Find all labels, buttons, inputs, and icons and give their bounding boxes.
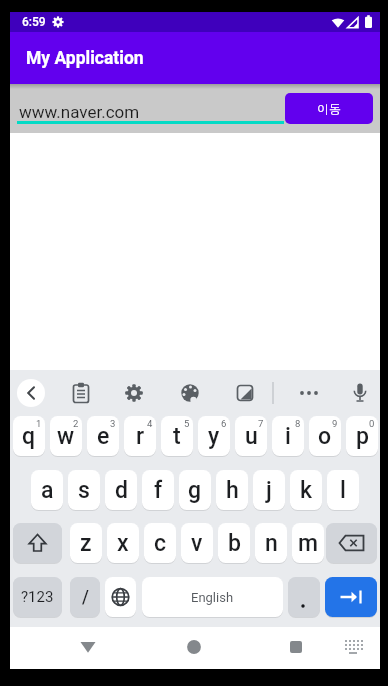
button[interactable]: q — [13, 416, 45, 456]
staticText: i — [285, 423, 291, 450]
staticText: p — [356, 423, 369, 450]
staticText: t — [173, 423, 181, 450]
button[interactable]: y — [198, 416, 230, 456]
button[interactable]: k — [290, 470, 322, 510]
button[interactable] — [281, 632, 311, 662]
staticText: 7 — [258, 418, 264, 429]
staticText: 5 — [184, 418, 190, 429]
button[interactable] — [326, 523, 377, 563]
staticText: My Application — [26, 48, 144, 69]
staticText: c — [154, 530, 167, 557]
staticText: 0 — [369, 418, 375, 429]
staticText: f — [154, 477, 163, 504]
button[interactable]: d — [105, 470, 137, 510]
button[interactable]: p — [346, 416, 378, 456]
button[interactable]: j — [253, 470, 285, 510]
button[interactable]: g — [179, 470, 211, 510]
staticText: h — [226, 477, 239, 504]
button[interactable]: / — [70, 577, 100, 617]
staticText: 8 — [295, 418, 301, 429]
button[interactable] — [14, 376, 48, 410]
staticText: English — [191, 590, 234, 605]
button[interactable]: u — [235, 416, 267, 456]
staticText: y — [208, 423, 220, 450]
button[interactable] — [179, 632, 209, 662]
staticText: w — [57, 423, 75, 450]
staticText: z — [80, 530, 92, 557]
button[interactable]: r — [124, 416, 156, 456]
button[interactable]: English — [142, 577, 283, 617]
staticText: g — [188, 477, 202, 504]
button[interactable]: v — [181, 523, 213, 563]
button[interactable]: l — [327, 470, 359, 510]
staticText: 1 — [36, 418, 42, 429]
staticText: q — [22, 423, 36, 450]
staticText: l — [340, 477, 346, 504]
button[interactable] — [343, 376, 377, 410]
button[interactable] — [117, 376, 151, 410]
staticText: x — [117, 530, 129, 557]
staticText: r — [136, 423, 145, 450]
button[interactable]: c — [144, 523, 176, 563]
button[interactable]: h — [216, 470, 248, 510]
staticText: v — [191, 530, 203, 557]
staticText: b — [228, 530, 241, 557]
staticText: n — [265, 530, 278, 557]
button[interactable] — [173, 376, 207, 410]
staticText: e — [97, 423, 110, 450]
staticText: 6:59 — [22, 15, 46, 29]
button[interactable]: www.naver.com — [17, 84, 294, 133]
staticText: o — [318, 423, 332, 450]
button[interactable]: f — [142, 470, 174, 510]
staticText: 2 — [73, 418, 79, 429]
button[interactable]: s — [68, 470, 100, 510]
staticText: u — [245, 423, 258, 450]
staticText: 3 — [110, 418, 116, 429]
staticText: a — [41, 477, 54, 504]
button[interactable] — [325, 577, 377, 617]
button[interactable]: e — [87, 416, 119, 456]
staticText: 9 — [332, 418, 338, 429]
staticText: 이동 — [317, 101, 341, 116]
staticText: www.naver.com — [19, 102, 140, 122]
button[interactable]: w — [50, 416, 82, 456]
staticText: ?123 — [21, 588, 54, 606]
button[interactable] — [338, 632, 368, 662]
staticText: k — [300, 477, 313, 504]
button[interactable]: i — [272, 416, 304, 456]
staticText: 6 — [221, 418, 227, 429]
button[interactable] — [288, 577, 320, 617]
button[interactable]: a — [31, 470, 63, 510]
staticText: / — [82, 587, 89, 608]
button[interactable]: o — [309, 416, 341, 456]
button[interactable] — [228, 376, 262, 410]
staticText: 4 — [147, 418, 153, 429]
button[interactable]: t — [161, 416, 193, 456]
staticText: d — [115, 477, 128, 504]
staticText: j — [266, 477, 272, 504]
button[interactable] — [13, 523, 62, 563]
button[interactable] — [292, 376, 326, 410]
button[interactable]: ?123 — [13, 577, 62, 617]
button[interactable] — [73, 632, 103, 662]
button[interactable]: b — [218, 523, 250, 563]
staticText: s — [78, 477, 90, 504]
button[interactable]: 이동 — [285, 93, 373, 124]
button[interactable]: z — [70, 523, 102, 563]
button[interactable] — [64, 376, 98, 410]
button[interactable] — [105, 577, 136, 617]
staticText: m — [298, 530, 319, 557]
button[interactable]: m — [292, 523, 324, 563]
button[interactable]: x — [107, 523, 139, 563]
button[interactable]: n — [255, 523, 287, 563]
